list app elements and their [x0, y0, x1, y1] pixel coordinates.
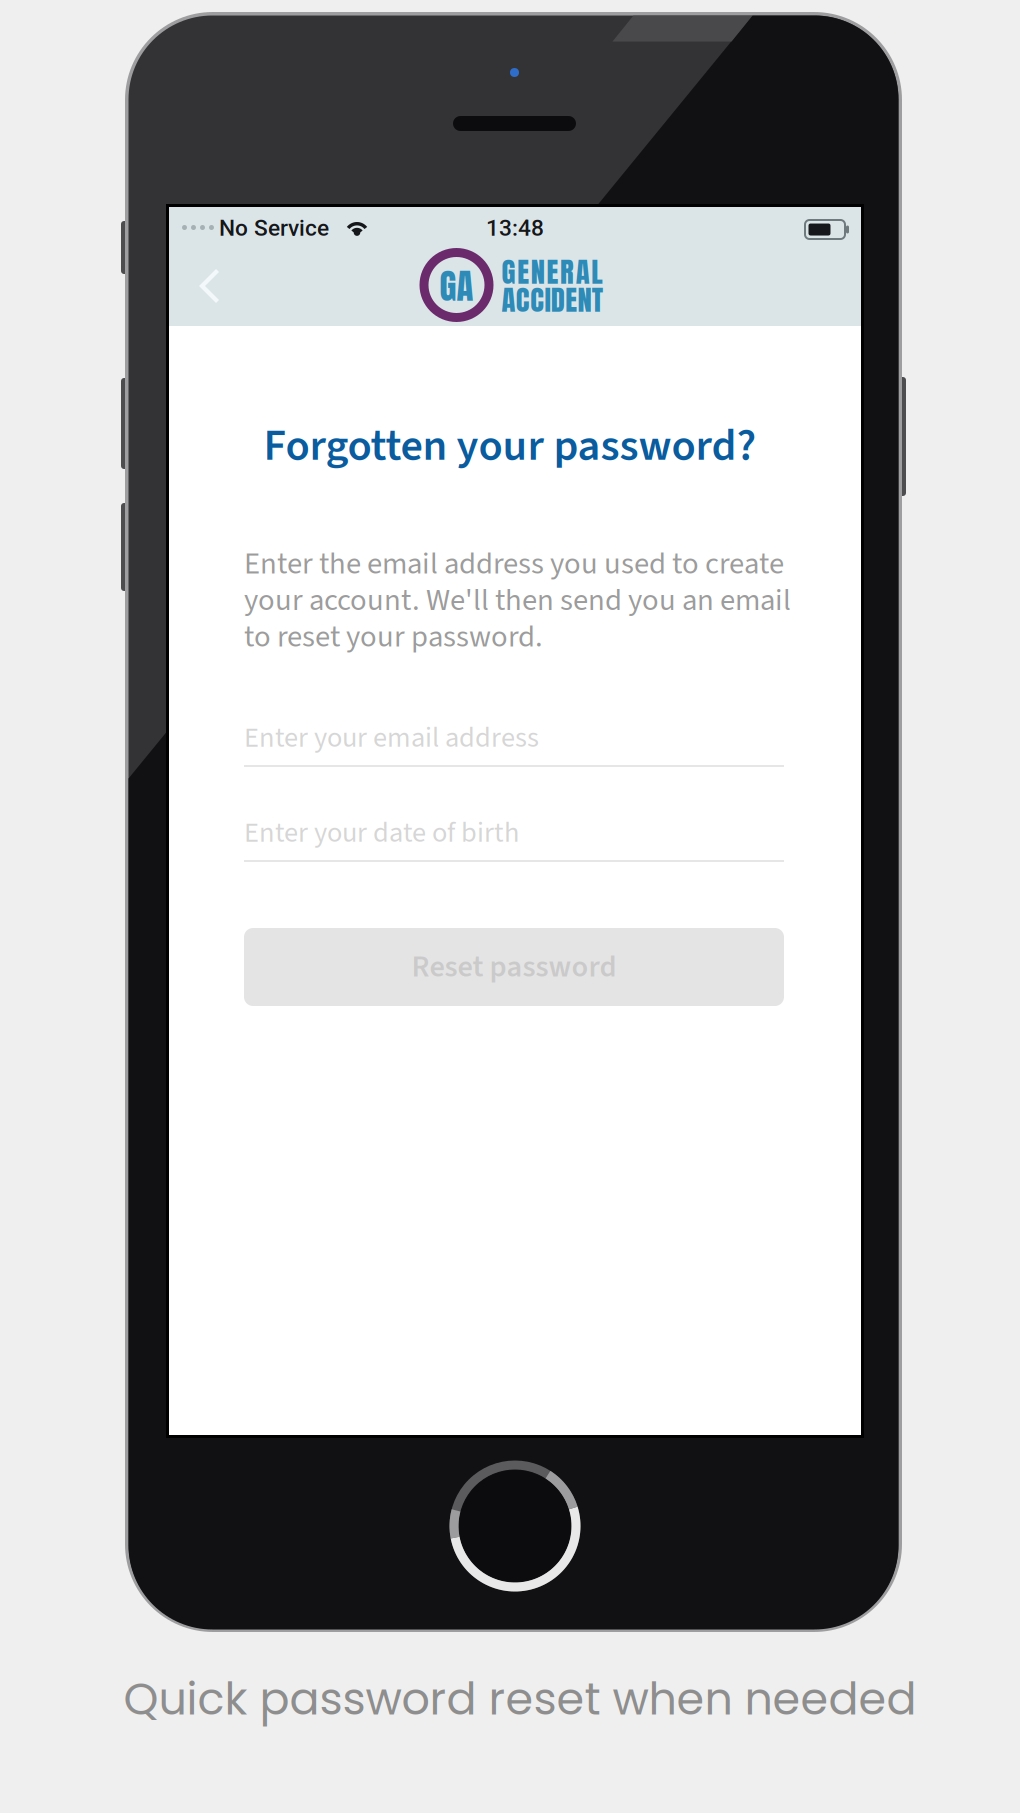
staticText: your account. We'll then send you an ema…	[244, 579, 791, 622]
staticText: No Service	[219, 215, 329, 241]
staticText: Enter the email address you used to crea…	[244, 542, 784, 586]
staticText: Enter your email address	[244, 718, 539, 758]
staticText: GENERAL	[501, 250, 602, 293]
staticText: to reset your password.	[244, 615, 543, 659]
staticText: ACCIDENT	[501, 278, 603, 321]
staticText: GA	[439, 260, 473, 312]
button[interactable]: Back	[173, 249, 247, 323]
staticText: 13:48	[486, 215, 544, 241]
staticText: Quick password reset when needed	[123, 1668, 916, 1730]
button[interactable]: Enter your date of birth	[244, 816, 784, 862]
button[interactable]: Enter your email address	[244, 721, 784, 767]
button[interactable]: Reset password	[244, 928, 784, 1006]
staticText: Enter your date of birth	[244, 813, 519, 853]
staticText: Forgotten your password?	[263, 414, 756, 477]
staticText: Reset password	[411, 945, 616, 989]
